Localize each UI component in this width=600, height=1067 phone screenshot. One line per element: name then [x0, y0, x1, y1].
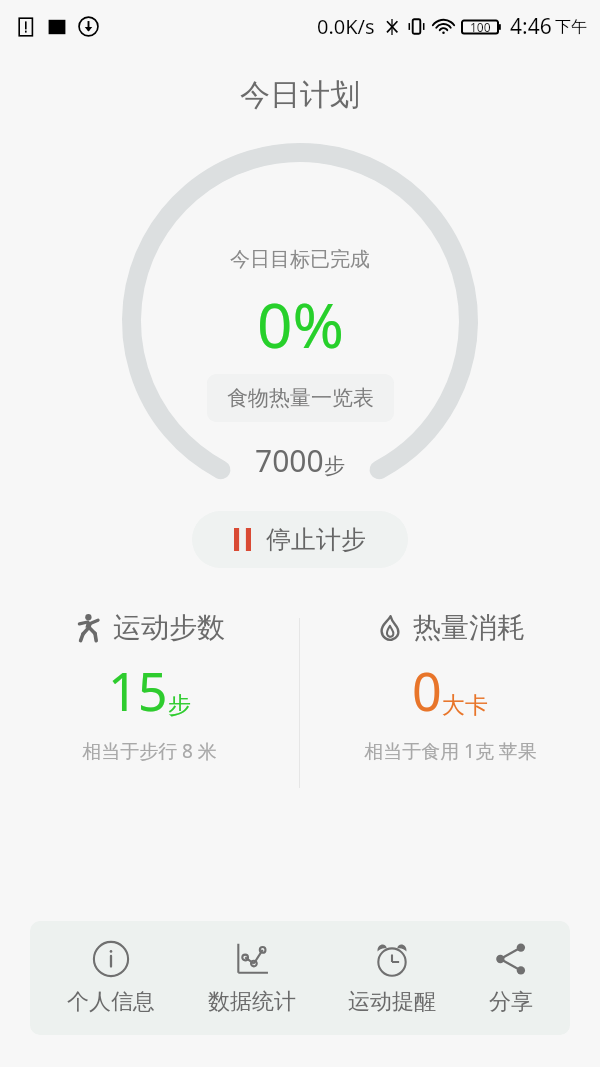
staticText: 个人信息: [67, 988, 155, 1016]
staticText: 步: [324, 453, 345, 479]
staticText: 运动提醒: [348, 988, 436, 1016]
staticText: 100: [470, 19, 491, 35]
button[interactable]: 热量消耗: [300, 610, 600, 764]
staticText: 今日计划: [240, 76, 360, 114]
button[interactable]: 运动步数: [0, 610, 299, 764]
staticText: 0: [412, 655, 442, 726]
staticText: 步: [168, 691, 191, 720]
staticText: 分享: [489, 988, 533, 1016]
button[interactable]: 运动提醒: [332, 938, 452, 1018]
staticText: 食物热量一览表: [227, 385, 374, 411]
staticText: 0.0K/s: [317, 13, 375, 40]
staticText: 相当于食用 1克 苹果: [364, 738, 537, 764]
button[interactable]: 分享: [473, 938, 549, 1018]
button[interactable]: 数据统计: [192, 938, 312, 1018]
staticText: 相当于步行 8 米: [82, 738, 217, 764]
staticText: 15: [108, 655, 168, 726]
staticText: 大卡: [442, 691, 488, 720]
staticText: 4:46: [510, 12, 552, 41]
staticText: 停止计步: [266, 524, 366, 555]
staticText: 下午: [555, 17, 587, 37]
staticText: 今日目标已完成: [230, 247, 370, 272]
staticText: 热量消耗: [413, 610, 525, 645]
staticText: 7000: [255, 440, 324, 481]
button[interactable]: 个人信息: [51, 938, 171, 1018]
button[interactable]: 食物热量一览表: [207, 374, 394, 422]
staticText: 数据统计: [208, 988, 296, 1016]
staticText: 0%: [257, 282, 344, 366]
button[interactable]: 停止计步: [192, 511, 408, 568]
staticText: 运动步数: [113, 610, 225, 645]
